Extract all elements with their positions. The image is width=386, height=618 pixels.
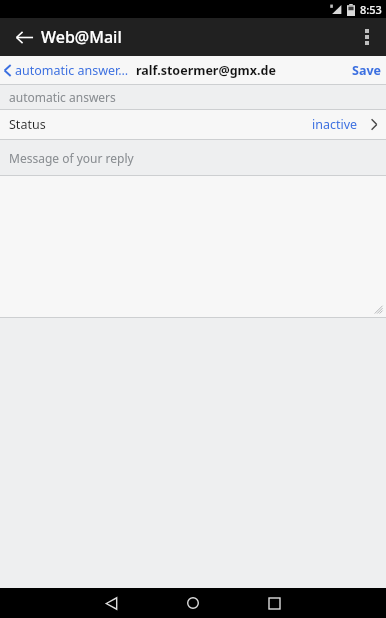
button[interactable]: Back <box>96 588 126 618</box>
staticText: automatic answers <box>9 89 116 105</box>
button[interactable]: Status <box>0 110 386 139</box>
button[interactable]: Home <box>178 588 208 618</box>
staticText: 8:53 <box>360 2 382 17</box>
button[interactable]: Save <box>347 58 386 83</box>
staticText: Save <box>352 62 381 79</box>
staticText: Status <box>9 116 46 133</box>
button[interactable]: Back <box>6 19 42 55</box>
staticText: ralf.stoermer@gmx.de <box>136 62 276 79</box>
staticText: automatic answer… <box>15 62 129 79</box>
staticText: Message of your reply <box>9 150 134 166</box>
button[interactable]: Recent apps <box>259 588 289 618</box>
staticText: Web@Mail <box>41 26 122 48</box>
staticText: inactive <box>312 116 358 133</box>
button[interactable]: More options <box>348 18 386 56</box>
button[interactable]: automatic answer… <box>0 62 133 79</box>
